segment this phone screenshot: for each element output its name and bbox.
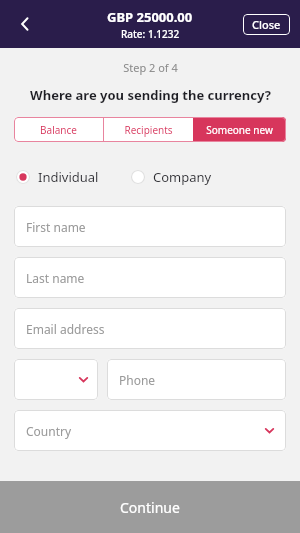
button[interactable]: First name [14,206,286,247]
button[interactable]: Select country code [14,359,98,400]
button[interactable]: Balance [14,117,103,142]
button[interactable]: Individual [16,166,99,188]
button[interactable]: Last name [14,257,286,298]
staticText: Email address [26,321,105,337]
button[interactable]: Close [243,14,290,35]
button[interactable]: Country [14,410,286,451]
staticText: Country [26,423,72,439]
staticText: Phone [119,372,156,388]
staticText: Company [153,168,212,186]
button[interactable]: Company [131,166,212,188]
staticText: Step 2 of 4 [123,60,178,75]
staticText: Someone new [206,123,273,137]
staticText: Recipients [124,123,173,137]
staticText: GBP 25000.00 [107,8,193,26]
button[interactable]: Phone [107,359,286,400]
staticText: Where are you sending the currency? [30,86,271,104]
staticText: Balance [40,123,77,137]
button[interactable]: Someone new [193,117,286,142]
staticText: Rate: 1.1232 [121,27,180,41]
button[interactable]: Back [6,5,44,43]
staticText: Individual [38,168,99,186]
button[interactable]: Email address [14,308,286,349]
button[interactable]: Continue [0,481,300,533]
staticText: Continue [120,498,180,517]
staticText: Last name [26,270,85,286]
button[interactable]: Recipients [104,117,193,142]
staticText: First name [26,219,86,235]
staticText: Close [252,17,281,32]
